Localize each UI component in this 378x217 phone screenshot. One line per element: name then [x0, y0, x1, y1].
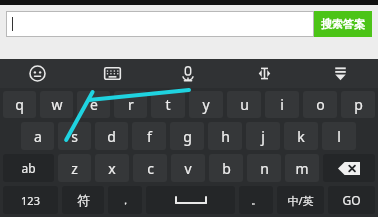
staticText: d — [107, 127, 116, 146]
button[interactable]: x — [95, 154, 129, 182]
button[interactable]: a — [21, 122, 54, 150]
button[interactable]: e — [77, 91, 110, 118]
button[interactable]: l — [322, 122, 356, 150]
staticText: j — [261, 127, 265, 146]
button[interactable]: u — [227, 91, 261, 118]
staticText: o — [316, 95, 325, 114]
button[interactable]: 中/英 — [277, 186, 324, 214]
button[interactable] — [6, 11, 314, 37]
button[interactable]: z — [58, 154, 91, 182]
button[interactable]: Voice input — [150, 59, 226, 88]
staticText: 符 — [77, 192, 90, 208]
staticText: g — [183, 127, 192, 146]
button[interactable]: r — [114, 91, 147, 118]
button[interactable]: Emoji — [0, 59, 75, 88]
button[interactable]: GO — [328, 186, 375, 214]
staticText: w — [51, 95, 63, 114]
button[interactable]: q — [3, 91, 36, 118]
button[interactable]: w — [40, 91, 73, 118]
button[interactable]: j — [246, 122, 280, 150]
button[interactable]: 123 — [3, 186, 58, 214]
button[interactable]: Space — [146, 186, 235, 214]
button[interactable]: b — [209, 154, 243, 182]
staticText: u — [240, 95, 249, 114]
staticText: s — [71, 127, 78, 146]
button[interactable]: Cursor control — [226, 59, 302, 88]
staticText: l — [337, 127, 341, 146]
staticText: y — [202, 95, 210, 114]
staticText: k — [297, 127, 305, 146]
staticText: 搜索答案 — [321, 17, 365, 31]
button[interactable]: i — [265, 91, 299, 118]
staticText: n — [260, 159, 269, 178]
staticText: m — [295, 159, 309, 178]
button[interactable]: t — [151, 91, 185, 118]
button[interactable]: o — [303, 91, 337, 118]
button[interactable]: d — [95, 122, 128, 150]
staticText: h — [221, 127, 230, 146]
button[interactable]: n — [247, 154, 281, 182]
staticText: b — [222, 159, 231, 178]
staticText: a — [34, 127, 42, 146]
staticText: 123 — [21, 193, 40, 208]
staticText: i — [280, 95, 284, 114]
staticText: 中/英 — [287, 193, 314, 208]
staticText: 。 — [251, 193, 262, 207]
button[interactable]: ， — [108, 186, 142, 214]
staticText: e — [90, 95, 98, 114]
staticText: f — [147, 127, 152, 146]
staticText: r — [128, 95, 134, 114]
staticText: c — [147, 159, 154, 178]
staticText: v — [184, 159, 192, 178]
button[interactable]: Backspace — [323, 154, 375, 182]
staticText: p — [354, 95, 363, 114]
button[interactable]: 。 — [239, 186, 273, 214]
button[interactable]: f — [132, 122, 166, 150]
button[interactable]: 搜索答案 — [314, 11, 372, 37]
button[interactable]: p — [341, 91, 375, 118]
button[interactable]: h — [208, 122, 242, 150]
staticText: x — [108, 159, 116, 178]
button[interactable]: s — [58, 122, 91, 150]
button[interactable]: c — [133, 154, 167, 182]
button[interactable]: g — [170, 122, 204, 150]
button[interactable]: ab — [3, 154, 54, 182]
staticText: ， — [120, 193, 131, 207]
staticText: z — [71, 159, 78, 178]
button[interactable]: 符 — [62, 186, 104, 214]
staticText: GO — [342, 192, 361, 208]
button[interactable]: m — [285, 154, 319, 182]
button[interactable]: v — [171, 154, 205, 182]
staticText: q — [15, 95, 24, 114]
button[interactable]: k — [284, 122, 318, 150]
staticText: ab — [21, 160, 36, 176]
button[interactable]: y — [189, 91, 223, 118]
button[interactable]: Hide keyboard — [302, 59, 378, 88]
staticText: t — [165, 95, 171, 114]
button[interactable]: Keyboard layout — [75, 59, 150, 88]
